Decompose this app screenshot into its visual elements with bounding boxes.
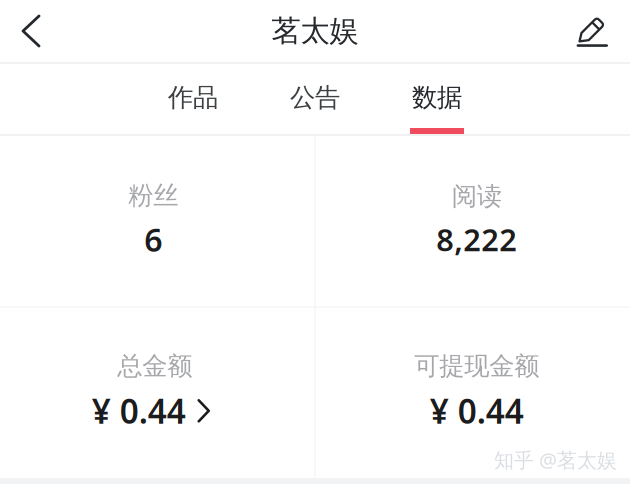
staticText: 总金额 (117, 351, 192, 382)
staticText: 阅读 (452, 181, 502, 212)
button[interactable]: 作品 (132, 64, 254, 134)
staticText: ¥ 0.44 (92, 389, 186, 433)
button[interactable]: 公告 (254, 64, 376, 134)
staticText: 数据 (412, 82, 462, 113)
staticText: 6 (144, 218, 162, 261)
staticText: 粉丝 (128, 180, 178, 211)
staticText: 可提现金额 (414, 351, 539, 382)
button[interactable]: Edit (554, 0, 630, 62)
staticText: ¥ 0.44 (430, 389, 524, 433)
staticText: 公告 (290, 82, 340, 113)
staticText: 知乎 @茗太娱 (494, 446, 617, 473)
staticText: 8,222 (436, 219, 517, 260)
button[interactable]: Back (0, 0, 62, 62)
button[interactable]: 总金额 (0, 307, 314, 478)
button[interactable]: 数据 (376, 64, 498, 134)
staticText: 作品 (168, 82, 218, 113)
staticText: 茗太娱 (271, 13, 358, 49)
